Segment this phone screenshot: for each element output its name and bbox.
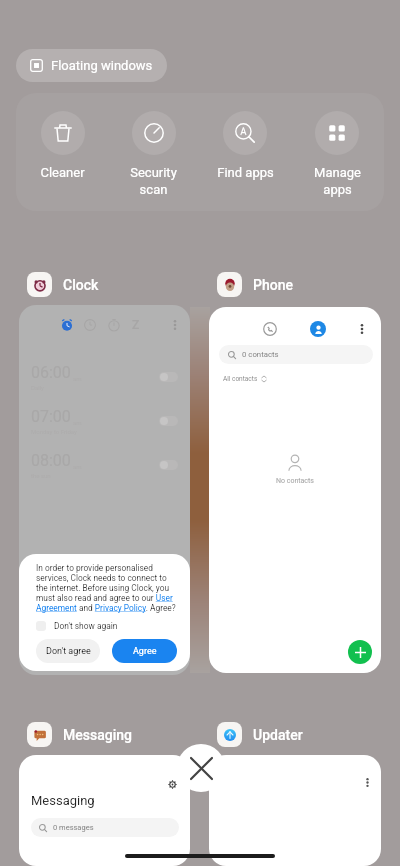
- button[interactable]: Phone: [217, 272, 293, 297]
- button[interactable]: Floating windows: [16, 49, 167, 82]
- button[interactable]: Close: [177, 744, 225, 792]
- button[interactable]: Add contact: [348, 640, 372, 664]
- staticText: Clock: [63, 277, 99, 293]
- staticText: Don't show again: [54, 621, 118, 631]
- button[interactable]: Manage apps: [291, 104, 383, 198]
- button[interactable]: Find apps: [199, 104, 291, 180]
- button[interactable]: [36, 621, 46, 631]
- button[interactable]: Security scan: [108, 104, 199, 198]
- staticText: Z: [132, 318, 140, 332]
- staticText: 0 messages: [53, 823, 94, 832]
- staticText: 08:00: [31, 451, 71, 470]
- button[interactable]: Cleaner: [17, 104, 108, 180]
- staticText: Agree: [133, 646, 157, 657]
- staticText: All contacts: [223, 375, 258, 383]
- staticText: Cleaner: [40, 165, 85, 180]
- staticText: 07:00: [31, 407, 71, 426]
- staticText: Find apps: [217, 165, 274, 180]
- button[interactable]: Z: [19, 305, 190, 675]
- staticText: Messaging: [31, 793, 95, 808]
- button[interactable]: Messaging: [19, 755, 190, 866]
- staticText: No contacts: [276, 477, 314, 485]
- staticText: Floating windows: [51, 58, 153, 73]
- button[interactable]: Messaging: [27, 722, 132, 747]
- button[interactable]: 0 contacts: [209, 307, 381, 673]
- button[interactable]: Don't agree: [36, 639, 100, 663]
- staticText: Updater: [253, 727, 303, 743]
- staticText: Manage apps: [314, 165, 361, 198]
- button[interactable]: Clock: [27, 272, 99, 297]
- staticText: Don't agree: [46, 646, 91, 657]
- button[interactable]: Agree: [112, 639, 177, 663]
- staticText: Security scan: [130, 165, 177, 198]
- staticText: 0 contacts: [242, 350, 279, 359]
- staticText: Phone: [253, 277, 293, 293]
- staticText: 06:00: [31, 363, 71, 382]
- staticText: Messaging: [63, 727, 132, 743]
- button[interactable]: Updater: [217, 722, 303, 747]
- staticText: In order to provide personalised service…: [36, 563, 177, 613]
- button[interactable]: [209, 755, 381, 866]
